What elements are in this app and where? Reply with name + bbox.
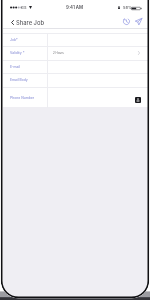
staticText: GS: [21, 5, 27, 10]
staticText: 2 Hours: [53, 51, 64, 55]
staticText: Phone Number: [10, 96, 34, 100]
staticText: Email Body: [10, 78, 28, 82]
staticText: E-mail: [10, 65, 21, 69]
button[interactable]: Send: [133, 16, 144, 27]
button[interactable]: Choose contact: [134, 96, 142, 104]
button[interactable]: History: [121, 16, 132, 27]
button[interactable]: E-mail: [3, 60, 148, 74]
button[interactable]: Phone Number: [3, 87, 148, 108]
button[interactable]: Job*: [3, 33, 148, 47]
button[interactable]: Validity *: [3, 46, 148, 60]
staticText: Job*: [10, 38, 18, 42]
staticText: Validity *: [10, 51, 25, 55]
staticText: Share Job: [16, 19, 45, 26]
button[interactable]: Share Job: [3, 17, 50, 28]
staticText: 58%: [123, 5, 132, 10]
button[interactable]: Email Body: [3, 73, 148, 87]
staticText: 9:41 AM: [2, 5, 147, 10]
